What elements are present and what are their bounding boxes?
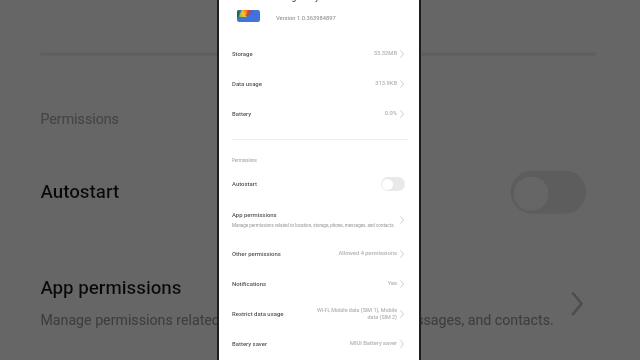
button[interactable]: Battery — [219, 99, 419, 129]
button[interactable]: App permissions — [219, 203, 419, 233]
staticText: Wi-Fi, Mobile data (SIM 1), Mobile data … — [316, 307, 397, 320]
button[interactable]: App permissions — [0, 251, 631, 344]
staticText: 33.32MB — [373, 50, 397, 57]
button[interactable]: Restrict data usage — [219, 299, 419, 329]
button[interactable]: Battery saver — [219, 329, 419, 359]
staticText: Notifications — [232, 280, 267, 287]
staticText: MIUI Battery saver — [349, 340, 397, 347]
button[interactable]: Autostart — [219, 169, 419, 199]
staticText: Version 1.0.363984897 — [276, 15, 336, 22]
staticText: Restrict data usage — [232, 310, 284, 317]
button[interactable]: Storage — [219, 39, 419, 69]
staticText: App permissions — [232, 211, 277, 218]
staticText: Battery saver — [232, 340, 268, 347]
button[interactable]: Battery — [0, 0, 631, 22]
button[interactable]: Other permissions — [219, 239, 419, 269]
staticText: Battery — [232, 110, 252, 117]
staticText: Manage permissions related to location, … — [232, 223, 395, 228]
staticText: 0.0% — [384, 110, 397, 117]
button[interactable]: Data usage — [219, 69, 419, 99]
staticText: Permissions — [232, 158, 257, 163]
staticText: App permissions — [40, 276, 182, 297]
staticText: Storage — [232, 50, 253, 57]
other: Autostart toggle — [511, 170, 586, 214]
staticText: Google Pay — [276, 0, 320, 2]
staticText: Data usage — [232, 80, 262, 87]
button[interactable]: Notifications — [219, 269, 419, 299]
staticText: Permissions — [40, 111, 119, 127]
staticText: Autostart — [232, 180, 257, 187]
staticText: Yes — [387, 280, 397, 287]
other: Autostart toggle — [381, 177, 405, 191]
staticText: Allowed 4 permissions — [338, 250, 397, 257]
staticText: 313.9KB — [375, 80, 397, 87]
staticText: Manage permissions related to location, … — [40, 313, 555, 328]
button[interactable]: Autostart — [0, 146, 631, 239]
staticText: Autostart — [40, 180, 119, 201]
staticText: Other permissions — [232, 250, 281, 257]
